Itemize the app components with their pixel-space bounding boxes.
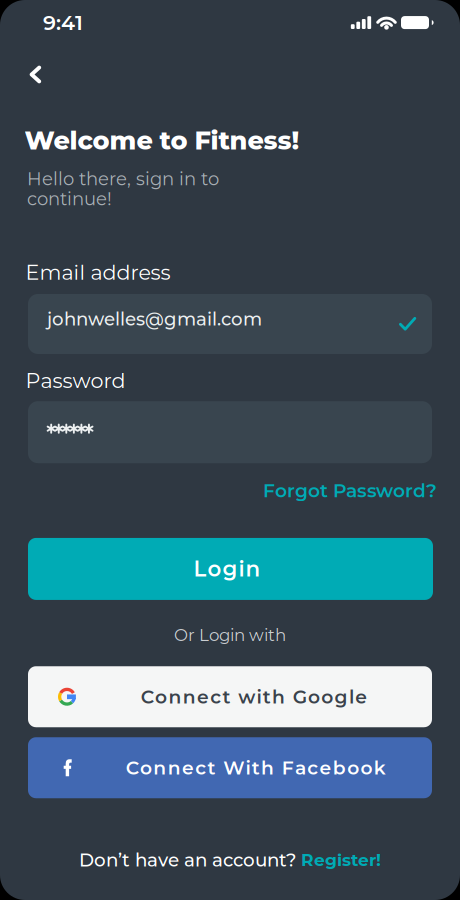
- staticText: Welcome to Fitness!: [24, 125, 299, 156]
- staticText: Password: [25, 368, 125, 393]
- button[interactable]: Connect with Google: [28, 666, 432, 727]
- staticText: Or Login with: [174, 625, 286, 645]
- button[interactable]: [28, 401, 432, 463]
- staticText: Connect With Facebook: [126, 756, 386, 779]
- staticText: Register!: [301, 849, 381, 870]
- button[interactable]: Forgot Password?: [263, 479, 437, 502]
- button[interactable]: Connect With Facebook: [28, 737, 432, 798]
- button[interactable]: [0, 65, 42, 84]
- staticText: Connect with Google: [141, 685, 367, 708]
- staticText: Hello there, sign in to continue!: [27, 168, 219, 210]
- staticText: Email address: [25, 260, 170, 285]
- staticText: Login: [193, 556, 260, 582]
- staticText: Forgot Password?: [263, 479, 437, 502]
- button[interactable]: johnwelles@gmail.com: [28, 294, 432, 354]
- button[interactable]: Login: [28, 538, 433, 600]
- button[interactable]: Don’t have an account?: [79, 849, 381, 871]
- staticText: Don’t have an account?: [79, 849, 301, 871]
- staticText: johnwelles@gmail.com: [47, 308, 262, 330]
- staticText: 9:41: [43, 10, 83, 35]
